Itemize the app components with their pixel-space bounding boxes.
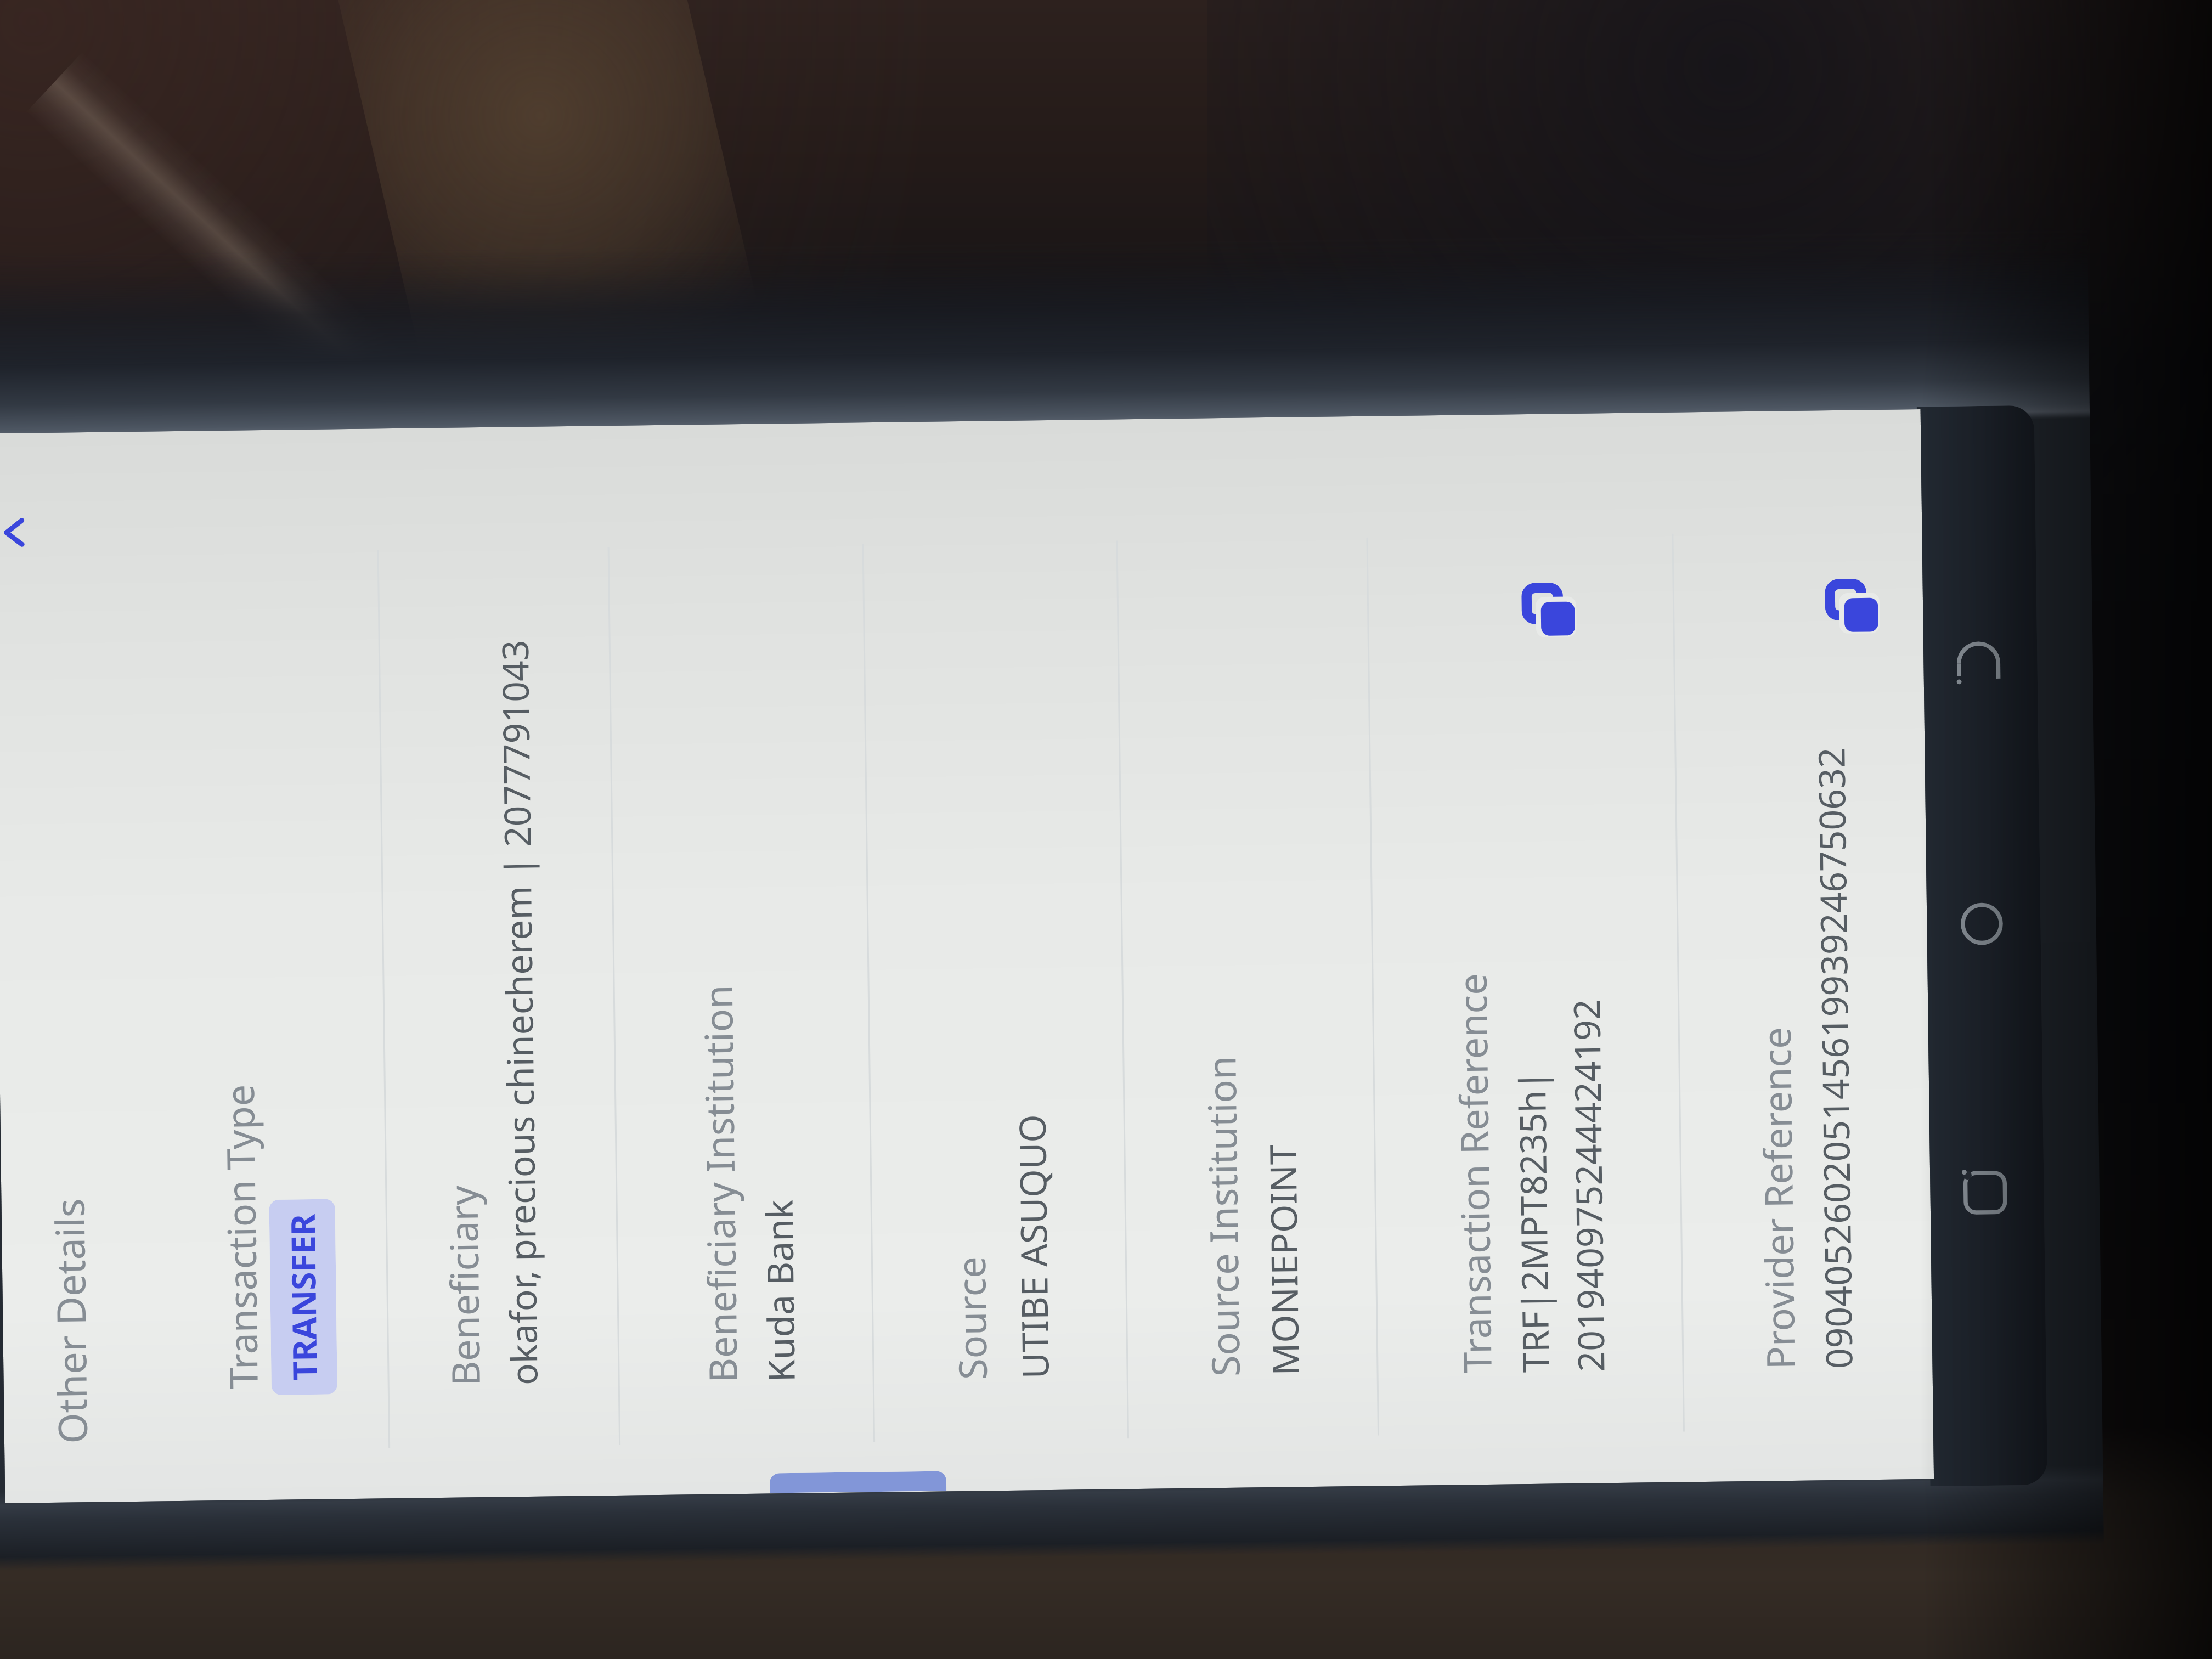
button[interactable] (650, 423, 874, 1495)
button[interactable] (1407, 412, 1684, 1485)
staticText: Beneficiary Institution (691, 985, 748, 1383)
button[interactable] (1709, 409, 1934, 1482)
button[interactable] (398, 426, 620, 1498)
button[interactable] (902, 419, 1128, 1492)
button[interactable]: Copy (1525, 586, 1577, 637)
staticText: Transaction Reference (1445, 973, 1502, 1374)
staticText: 090405260205145619939246750632 (1806, 747, 1863, 1369)
staticText: Source Institution (1194, 1055, 1251, 1377)
staticText: TRF|2MPT8235h| (1506, 1070, 1559, 1373)
staticText: okafor, precious chinecherem | 207779104… (489, 640, 548, 1386)
staticText: Source (944, 1256, 998, 1380)
button[interactable]: Recents (1950, 1157, 2021, 1228)
button[interactable]: TRANSFER (269, 1199, 337, 1395)
staticText: MONIEPOINT (1257, 1144, 1309, 1376)
button[interactable]: Home (1946, 888, 2017, 959)
button[interactable] (1155, 416, 1378, 1489)
button[interactable]: Collapse (0, 511, 33, 554)
staticText: Transaction Type (213, 1084, 269, 1389)
button[interactable] (173, 429, 389, 1501)
staticText: Beneficiary (436, 1185, 491, 1386)
staticText: Kuda Bank (754, 1199, 805, 1382)
button[interactable]: Back (1943, 625, 2014, 696)
staticText: UTIBE ASUQUO (1006, 1114, 1059, 1379)
staticText: Provider Reference (1749, 1027, 1806, 1370)
staticText: Other Details (42, 1198, 99, 1444)
button[interactable]: Copy (1829, 583, 1880, 634)
staticText: TRANSFER (280, 1213, 327, 1381)
staticText: 201940975244424192 (1561, 999, 1615, 1372)
